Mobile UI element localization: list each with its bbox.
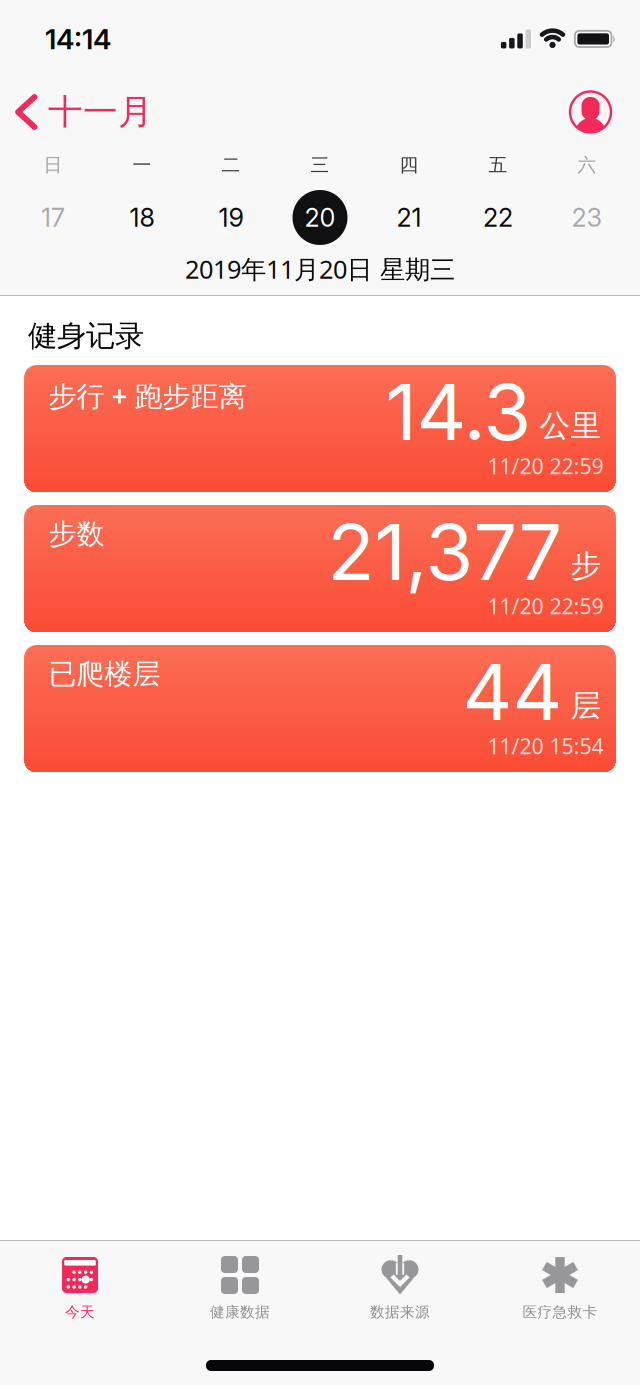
staticText: 健身记录 bbox=[28, 318, 144, 354]
staticText: 步行 + 跑步距离 bbox=[48, 377, 246, 414]
staticText: 21,377 bbox=[327, 505, 562, 599]
staticText: 20 bbox=[304, 202, 335, 233]
button[interactable]: 19 bbox=[186, 190, 275, 245]
staticText: 六 bbox=[577, 153, 596, 176]
button[interactable]: 21 bbox=[364, 190, 453, 245]
staticText: 五 bbox=[488, 153, 507, 176]
staticText: 已爬楼层 bbox=[48, 657, 160, 691]
button[interactable]: 返回 十一月 bbox=[0, 91, 153, 133]
staticText: 数据来源 bbox=[370, 1303, 430, 1321]
button[interactable]: 20 bbox=[275, 190, 364, 245]
staticText: 四 bbox=[399, 153, 418, 176]
staticText: 18 bbox=[129, 202, 154, 233]
staticText: 14.3 bbox=[385, 365, 531, 459]
button[interactable]: 医疗急救卡 bbox=[480, 1241, 640, 1321]
button[interactable]: 健康数据 bbox=[160, 1241, 320, 1321]
staticText: 2019年11月20日 星期三 bbox=[185, 252, 455, 286]
staticText: 十一月 bbox=[48, 91, 153, 133]
button[interactable]: 17 bbox=[8, 190, 97, 245]
staticText: 21 bbox=[396, 202, 421, 233]
staticText: 日 bbox=[43, 153, 62, 176]
staticText: 层 bbox=[570, 687, 601, 725]
staticText: 今天 bbox=[65, 1303, 95, 1321]
staticText: 步数 bbox=[48, 517, 104, 551]
staticText: 公里 bbox=[539, 407, 601, 445]
staticText: 23 bbox=[571, 202, 602, 233]
staticText: 14:14 bbox=[45, 22, 111, 56]
staticText: 44 bbox=[462, 645, 562, 739]
staticText: 11/20 22:59 bbox=[487, 592, 603, 620]
staticText: 医疗急救卡 bbox=[522, 1303, 597, 1321]
button[interactable]: 22 bbox=[453, 190, 542, 245]
button[interactable]: 今天 bbox=[0, 1241, 160, 1321]
staticText: 健康数据 bbox=[210, 1303, 270, 1321]
button[interactable]: 18 bbox=[97, 190, 186, 245]
button[interactable]: 步行 + 跑步距离 bbox=[24, 365, 615, 492]
staticText: 三 bbox=[310, 153, 329, 176]
button[interactable]: 23 bbox=[542, 190, 631, 245]
staticText: 11/20 22:59 bbox=[487, 452, 603, 480]
staticText: 17 bbox=[41, 202, 65, 233]
button[interactable]: 数据来源 bbox=[320, 1241, 480, 1321]
staticText: 二 bbox=[221, 153, 240, 176]
button[interactable]: 个人资料 bbox=[570, 91, 640, 132]
staticText: 11/20 15:54 bbox=[487, 732, 603, 760]
button[interactable]: 已爬楼层 bbox=[24, 645, 615, 772]
staticText: 步 bbox=[570, 547, 601, 585]
staticText: 一 bbox=[132, 153, 151, 176]
staticText: 19 bbox=[218, 202, 243, 233]
staticText: 22 bbox=[483, 202, 513, 233]
button[interactable]: 步数 bbox=[24, 505, 615, 632]
